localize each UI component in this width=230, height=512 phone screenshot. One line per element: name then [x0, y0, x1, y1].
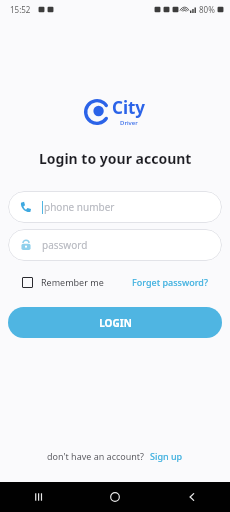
button[interactable]: Home	[76, 482, 153, 512]
button[interactable]: Forget password?	[132, 276, 208, 288]
staticText: LOGIN	[99, 316, 132, 330]
staticText: Login to your account	[39, 149, 192, 168]
staticText: Remember me	[41, 276, 104, 288]
button[interactable]: Back	[153, 482, 230, 512]
staticText: phone number	[44, 200, 115, 214]
button[interactable]: LOGIN	[8, 307, 222, 338]
staticText: Sign up	[150, 450, 183, 462]
staticText: City	[112, 96, 146, 119]
other: Phone number	[20, 201, 32, 213]
staticText: Driver	[120, 119, 138, 127]
staticText: 80%	[199, 4, 215, 15]
button[interactable]: Recents	[0, 482, 76, 512]
staticText: 15:52	[10, 4, 31, 15]
button[interactable]: Password	[8, 229, 222, 261]
staticText: don't have an account?	[47, 450, 145, 462]
button[interactable]: Remember me	[22, 276, 104, 288]
button[interactable]: Phone number	[8, 191, 222, 223]
staticText: Forget password?	[132, 276, 208, 288]
other: Password	[20, 239, 32, 251]
staticText: password	[42, 238, 88, 252]
button[interactable]: Sign up	[150, 450, 183, 462]
